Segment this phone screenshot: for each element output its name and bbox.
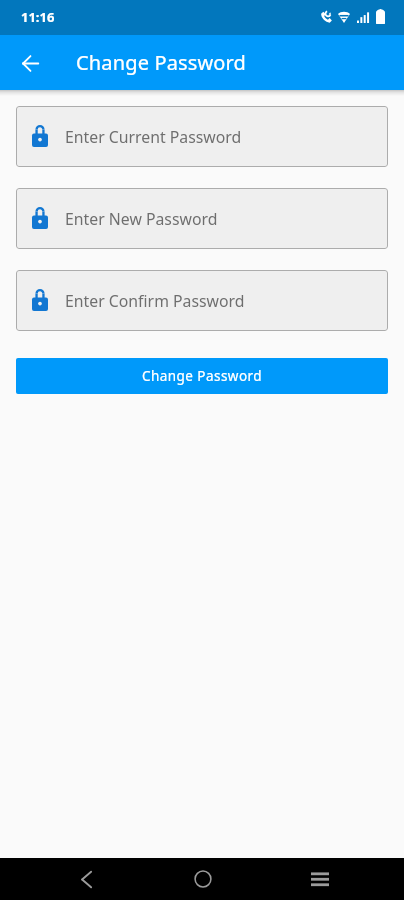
button[interactable]: Enter Current Password [16, 106, 388, 167]
staticText: Enter Confirm Password [65, 290, 245, 312]
staticText: Enter New Password [65, 208, 218, 230]
button[interactable]: Enter Confirm Password [16, 270, 388, 331]
button[interactable]: Change Password [16, 358, 388, 394]
staticText: Change Password [142, 367, 263, 385]
staticText: Change Password [76, 49, 247, 76]
staticText: Enter Current Password [65, 126, 242, 148]
button[interactable]: Back [62, 858, 110, 900]
button[interactable]: Back [9, 42, 51, 84]
button[interactable]: Enter New Password [16, 188, 388, 249]
staticText: 11:16 [21, 8, 55, 26]
button[interactable]: Home [179, 858, 227, 900]
button[interactable]: Recent apps [296, 858, 344, 900]
